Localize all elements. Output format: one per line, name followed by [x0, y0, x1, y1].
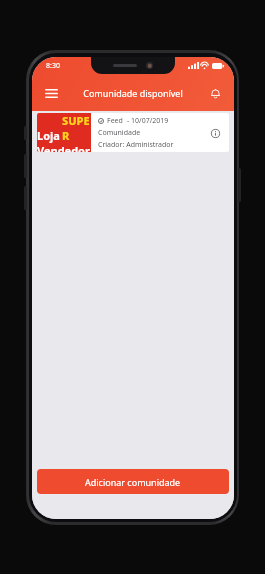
button[interactable]: Loja — [37, 113, 229, 152]
staticText: Comunidade — [98, 128, 141, 138]
staticText: Comunidade disponível — [83, 87, 183, 99]
button[interactable]: Information — [203, 121, 227, 145]
button[interactable]: Notifications — [201, 79, 229, 107]
button[interactable]: Adicionar comunidade — [37, 469, 229, 494]
staticText: Feed — [107, 116, 123, 126]
staticText: Criador: Administrador — [98, 140, 174, 150]
staticText: 8:30 — [46, 61, 60, 71]
staticText: Vendedora — [37, 143, 91, 152]
staticText: SUPER — [62, 113, 91, 143]
staticText: Loja — [37, 128, 60, 143]
button[interactable]: Menu — [36, 78, 66, 108]
staticText: Adicionar comunidade — [85, 476, 181, 488]
staticText: - 10/07/2019 — [127, 116, 169, 126]
